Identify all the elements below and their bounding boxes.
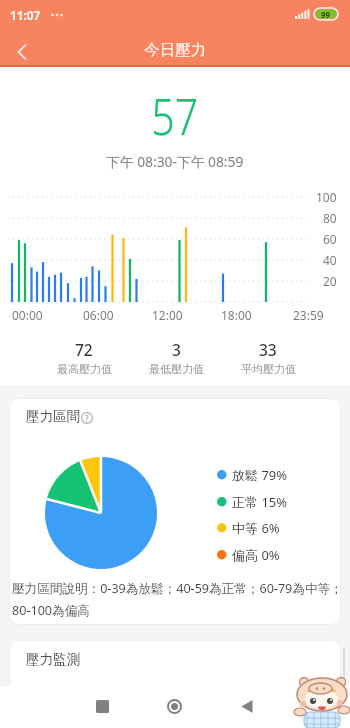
staticText: ? xyxy=(85,413,89,424)
staticText: 60 xyxy=(323,231,337,247)
button[interactable]: 放鬆 79% xyxy=(217,466,288,484)
staticText: 99 xyxy=(321,9,331,20)
staticText: 00:00 xyxy=(12,307,43,323)
button[interactable]: 正常 15% xyxy=(217,493,288,511)
staticText: 06:00 xyxy=(83,307,114,323)
staticText: 壓力區間說明：0-39為放鬆；40-59為正常；60-79為中等； 80-100… xyxy=(12,580,341,619)
staticText: 放鬆 79% xyxy=(232,466,288,484)
staticText: 80 xyxy=(323,210,337,226)
staticText: 72 xyxy=(75,339,93,360)
staticText: 33 xyxy=(259,339,277,360)
staticText: 11:07 xyxy=(10,7,41,23)
staticText: 平均壓力值 xyxy=(241,362,296,376)
staticText: 最高壓力值 xyxy=(57,362,112,376)
staticText: 壓力區間 xyxy=(26,408,80,425)
staticText: 12:00 xyxy=(152,307,183,323)
button[interactable]: 壓力監測 xyxy=(9,640,341,700)
button[interactable] xyxy=(294,672,350,728)
staticText: 下午 08:30-下午 08:59 xyxy=(106,152,244,171)
staticText: 18:00 xyxy=(221,307,252,323)
staticText: 壓力監測 xyxy=(26,651,80,668)
button[interactable] xyxy=(235,694,259,718)
staticText: 57 xyxy=(151,82,199,150)
button[interactable]: ? xyxy=(81,412,93,424)
staticText: 最低壓力值 xyxy=(149,362,204,376)
button[interactable] xyxy=(90,694,114,718)
button[interactable]: 壓力區間 xyxy=(9,398,341,625)
button[interactable]: 偏高 0% xyxy=(217,546,280,564)
staticText: 偏高 0% xyxy=(232,546,280,564)
staticText: 23:59 xyxy=(293,307,324,323)
staticText: 正常 15% xyxy=(232,493,288,511)
button[interactable]: 中等 6% xyxy=(217,519,280,537)
staticText: 中等 6% xyxy=(232,519,280,537)
staticText: 今日壓力 xyxy=(144,40,206,60)
staticText: 40 xyxy=(323,252,337,268)
staticText: 3 xyxy=(172,339,181,360)
button[interactable] xyxy=(8,39,36,64)
button[interactable] xyxy=(162,694,186,718)
staticText: 100 xyxy=(316,189,337,205)
staticText: 20 xyxy=(323,273,337,289)
